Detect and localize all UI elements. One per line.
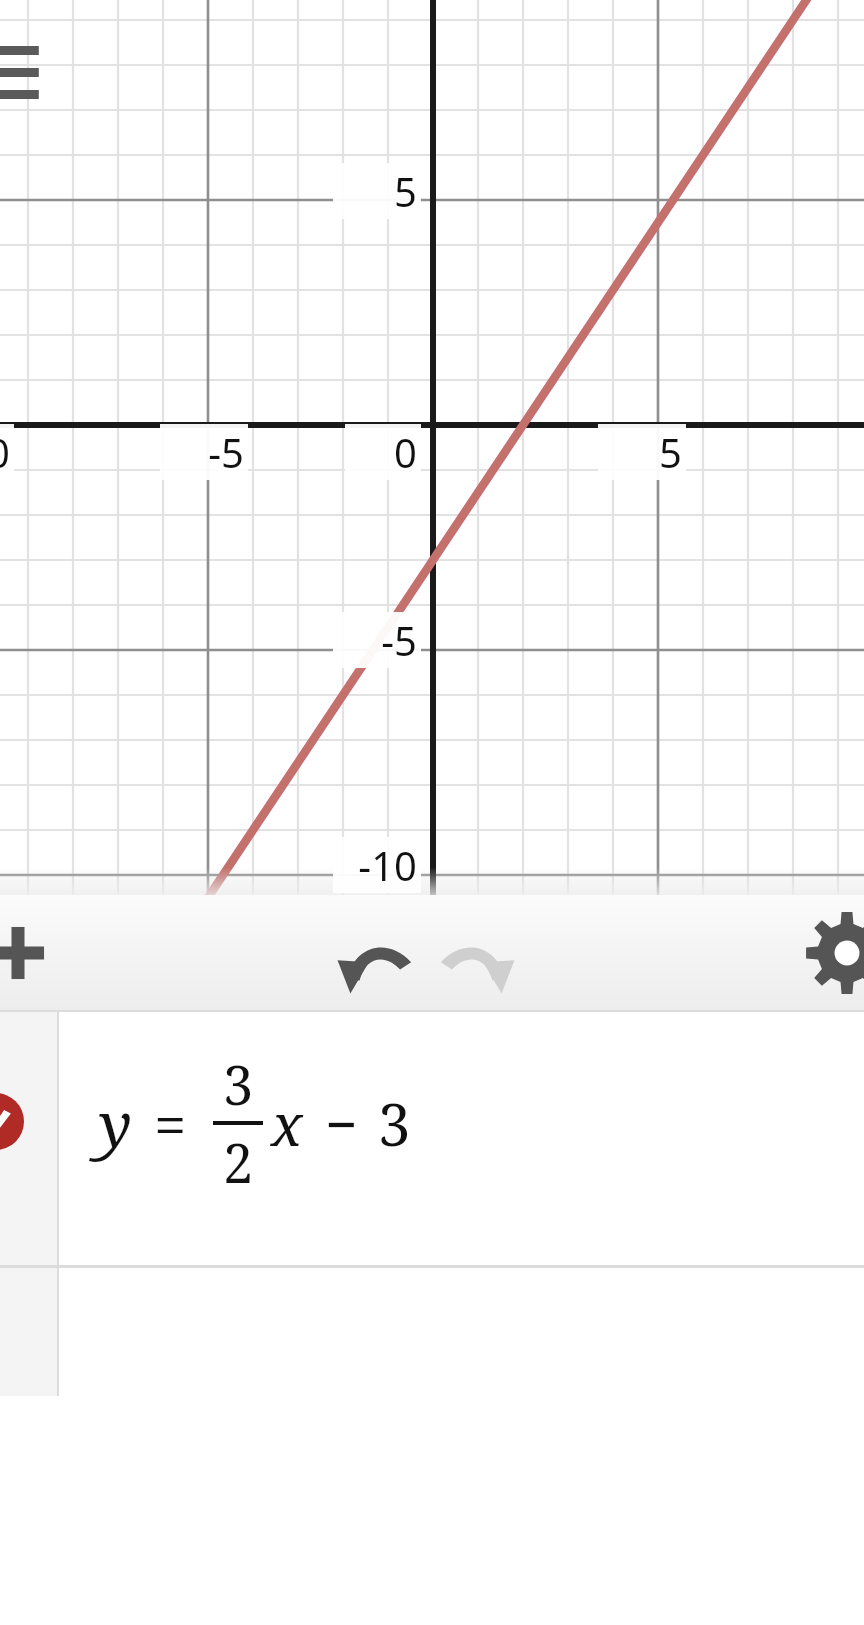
staticText: 0 — [349, 425, 417, 479]
staticText: -5 — [164, 425, 244, 479]
staticText: = — [154, 1084, 187, 1163]
button[interactable]: Menu — [0, 30, 54, 106]
staticText: − — [325, 1085, 358, 1161]
staticText: 5 — [602, 425, 682, 479]
staticText: y — [99, 1081, 132, 1165]
button[interactable]: Settings — [804, 910, 864, 996]
button[interactable]: Redo — [428, 907, 520, 999]
button[interactable]: Toggle graph visibility — [0, 1012, 57, 1265]
staticText: -5 — [337, 613, 417, 667]
button[interactable]: Undo — [332, 907, 424, 999]
button[interactable]: 5 — [0, 0, 864, 895]
button[interactable]: Add expression — [0, 911, 60, 995]
staticText: 3 — [378, 1084, 411, 1163]
staticText: 0 — [0, 425, 10, 479]
staticText: 2 — [223, 1125, 254, 1199]
button[interactable]: Toggle graph visibility — [0, 1012, 864, 1265]
staticText: -10 — [337, 838, 417, 892]
staticText: 5 — [337, 164, 417, 218]
staticText: 3 — [223, 1047, 254, 1121]
staticText: x — [271, 1084, 303, 1163]
button[interactable] — [0, 1268, 864, 1396]
